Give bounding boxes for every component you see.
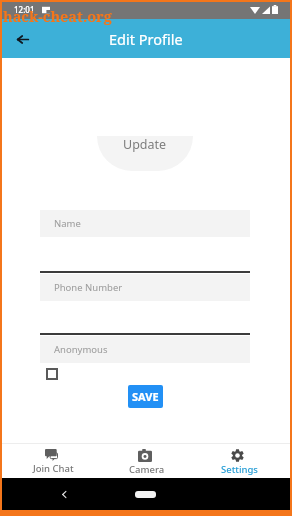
button[interactable]: Back [10,27,34,51]
staticText: Join Chat [33,462,74,475]
staticText: 12:01 [14,4,35,15]
staticText: Name [54,217,81,230]
button[interactable]: Update [97,136,193,171]
staticText: Phone Number [54,281,123,294]
button[interactable]: Name [40,210,250,237]
button[interactable]: Join Chat [5,445,98,479]
other: Back [60,490,69,499]
button[interactable]: Anonymous [40,336,250,363]
staticText: Update [123,136,167,153]
button[interactable]: Phone Number [40,274,250,301]
staticText: Anonymous [54,343,108,356]
button[interactable]: Camera [98,445,191,479]
button[interactable]: Anonymous [46,368,58,380]
staticText: hack-cheat.org [3,6,112,26]
button[interactable]: SAVE [128,385,163,408]
staticText: Edit Profile [109,29,183,49]
staticText: SAVE [132,389,159,404]
staticText: Settings [221,463,258,476]
button[interactable]: Settings [191,445,284,479]
staticText: Camera [129,463,165,476]
